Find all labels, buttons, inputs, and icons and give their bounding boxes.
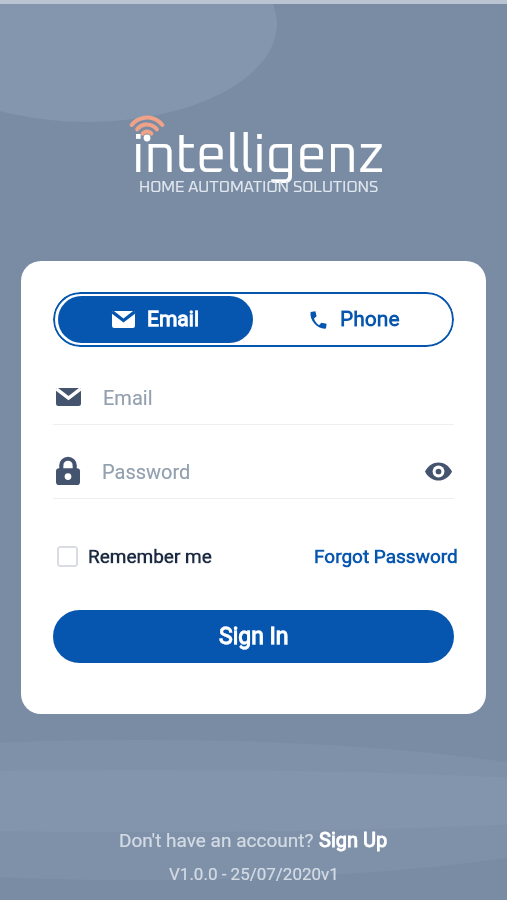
staticText: Password	[102, 460, 191, 483]
staticText: intelligenz	[132, 130, 385, 183]
button[interactable]: Show password	[422, 455, 454, 487]
staticText: Email	[147, 307, 199, 332]
button[interactable]: Remember me	[57, 545, 212, 567]
button[interactable]: Email	[58, 296, 253, 343]
staticText: Phone	[340, 307, 400, 332]
button[interactable]: Forgot Password	[314, 545, 458, 567]
staticText: Forgot Password	[314, 545, 458, 567]
staticText: Email	[103, 386, 153, 409]
staticText: Sign In	[219, 623, 289, 650]
staticText: V1.0.0 - 25/07/2020v1	[169, 864, 339, 884]
staticText: Sign Up	[319, 828, 388, 851]
button[interactable]: Sign In	[53, 610, 454, 663]
staticText: HOME AUTOMATION SOLUTIONS	[139, 179, 379, 195]
staticText: Don't have an account?	[119, 829, 319, 851]
button[interactable]: Phone	[253, 292, 454, 347]
staticText: Remember me	[88, 545, 212, 567]
button[interactable]: Sign Up	[319, 828, 388, 851]
